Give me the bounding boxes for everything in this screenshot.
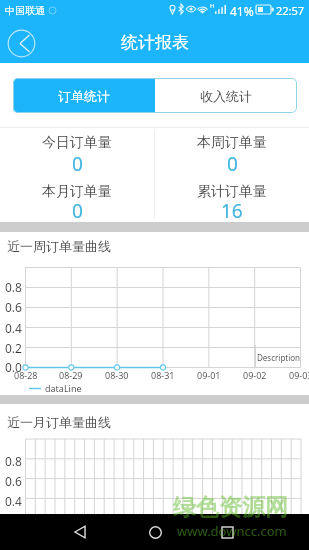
staticText: 本周订单量 — [197, 134, 267, 152]
staticText: 0 — [72, 151, 83, 177]
button[interactable]: Home — [138, 515, 172, 549]
staticText: 收入统计 — [200, 88, 252, 104]
staticText: 绿色资源网 — [173, 493, 288, 522]
staticText: 09-02 — [243, 369, 267, 381]
staticText: 09-03 — [289, 369, 309, 381]
staticText: 22:57 — [276, 3, 305, 18]
staticText: 统计报表 — [121, 32, 189, 53]
staticText: 09-01 — [197, 369, 221, 381]
staticText: 0.0 — [5, 359, 22, 372]
staticText: H — [210, 2, 215, 10]
staticText: 08-29 — [59, 369, 83, 381]
button[interactable]: 订单统计 — [13, 78, 155, 113]
staticText: 0 — [72, 198, 83, 224]
staticText: 0.6 — [5, 299, 22, 312]
staticText: 中国联通 — [5, 4, 45, 17]
staticText: 今日订单量 — [42, 134, 112, 152]
staticText: 本月订单量 — [42, 183, 112, 201]
staticText: 0.4 — [5, 493, 22, 506]
staticText: 0.6 — [5, 473, 22, 486]
staticText: 0.8 — [5, 453, 22, 466]
staticText: 08-28 — [14, 369, 38, 381]
staticText: 近一周订单量曲线 — [7, 238, 111, 254]
button[interactable]: Back — [7, 29, 36, 58]
staticText: 16 — [221, 198, 243, 224]
staticText: 累计订单量 — [197, 183, 267, 201]
staticText: Description — [257, 352, 301, 363]
staticText: 0.2 — [5, 340, 22, 353]
staticText: dataLine — [45, 382, 82, 394]
staticText: 0.4 — [5, 320, 22, 333]
staticText: 0 — [227, 151, 238, 177]
button[interactable]: Recents — [210, 515, 244, 549]
staticText: 订单统计 — [58, 88, 110, 104]
staticText: 08-31 — [151, 369, 175, 381]
staticText: www.downcc.com — [177, 522, 287, 540]
staticText: 近一月订单量曲线 — [7, 414, 111, 430]
button[interactable]: 收入统计 — [155, 78, 297, 113]
staticText: 41% — [230, 3, 254, 19]
staticText: 0.8 — [5, 279, 22, 292]
staticText: 08-30 — [105, 369, 129, 381]
button[interactable]: Back — [63, 515, 97, 549]
